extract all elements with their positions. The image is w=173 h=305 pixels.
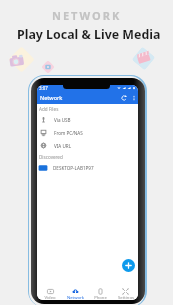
staticText: Network [40,94,63,101]
staticText: Phone [94,295,107,299]
button[interactable]: Refresh [118,92,129,103]
button[interactable]: Network [63,280,88,300]
staticText: From PC/NAS [54,130,83,136]
staticText: Discovered [39,154,63,160]
button[interactable]: DESKTOP-LAB1P97 [37,161,138,174]
staticText: Add Files [39,106,59,112]
button[interactable]: Add [122,259,135,272]
staticText: Settings [118,295,134,299]
staticText: DESKTOP-LAB1P97 [53,165,94,171]
button[interactable]: Video [37,280,63,300]
button[interactable]: Settings [113,280,138,300]
button[interactable]: Phone [88,280,113,300]
staticText: Play Local & Live Media [17,26,161,43]
button[interactable]: More options [129,93,138,102]
staticText: Via USB [54,117,71,123]
button[interactable]: From PC/NAS [37,126,138,139]
staticText: Network [67,295,84,299]
staticText: VIA URL [54,143,72,149]
button[interactable]: Via USB [37,113,138,126]
staticText: NETWORK [52,8,122,23]
staticText: 3:07 [39,85,48,91]
staticText: Video [44,295,56,299]
button[interactable]: VIA URL [37,139,138,152]
